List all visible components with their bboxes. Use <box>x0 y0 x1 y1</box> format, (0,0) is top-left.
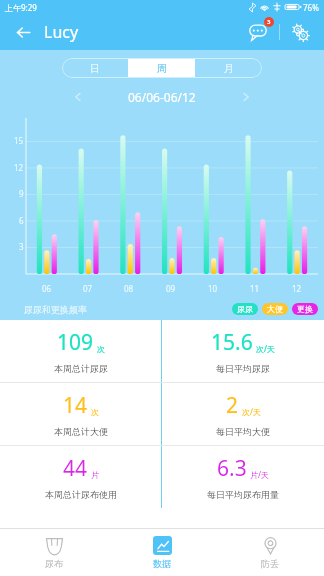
staticText: 数据 <box>153 558 171 569</box>
button[interactable]: 14 <box>0 383 161 445</box>
staticText: 07 <box>83 283 93 294</box>
staticText: 片/天 <box>250 469 269 480</box>
button[interactable]: 44 <box>0 446 161 508</box>
staticText: 大便 <box>267 304 283 314</box>
button[interactable]: 2 <box>162 383 324 445</box>
button[interactable]: 防丢 <box>216 529 324 576</box>
button[interactable]: 6.3 <box>162 446 324 508</box>
staticText: 每日平均大便 <box>216 426 270 437</box>
button[interactable]: 周 <box>128 58 195 78</box>
staticText: 9 <box>19 188 24 199</box>
button[interactable]: Previous week <box>68 87 88 107</box>
staticText: 防丢 <box>261 558 279 569</box>
staticText: 次/天 <box>242 406 261 417</box>
button[interactable]: 大便 <box>262 303 288 315</box>
staticText: 109 <box>57 328 94 357</box>
button[interactable]: 日 <box>62 58 128 78</box>
staticText: 每日平均尿尿 <box>216 363 270 374</box>
staticText: 次/天 <box>256 343 275 354</box>
staticText: 06 <box>42 283 52 294</box>
staticText: 15.6 <box>211 328 253 357</box>
staticText: 每日平均尿布用量 <box>207 489 279 500</box>
staticText: 11 <box>250 283 260 294</box>
staticText: 片 <box>91 470 99 480</box>
staticText: 6.3 <box>217 454 247 483</box>
staticText: 76% <box>303 2 319 13</box>
button[interactable]: Back <box>10 19 36 45</box>
staticText: 本周总计大便 <box>54 426 108 437</box>
button[interactable]: Next week <box>236 87 256 107</box>
button[interactable]: Messages <box>245 18 273 46</box>
staticText: 08 <box>124 283 134 294</box>
staticText: 09 <box>166 283 176 294</box>
button[interactable]: 尿尿 <box>232 303 258 315</box>
staticText: 12 <box>292 283 302 294</box>
staticText: 本周总计尿尿 <box>54 363 108 374</box>
staticText: 12 <box>14 162 24 173</box>
staticText: 6 <box>19 215 24 226</box>
staticText: 2 <box>226 391 239 420</box>
button[interactable]: 尿布 <box>0 529 108 576</box>
staticText: Lucy <box>44 21 79 43</box>
staticText: 日 <box>90 62 100 75</box>
staticText: 10 <box>208 283 218 294</box>
staticText: 尿尿 <box>237 304 253 314</box>
staticText: 15 <box>14 135 24 146</box>
staticText: 14 <box>63 391 88 420</box>
staticText: 月 <box>224 62 234 75</box>
button[interactable]: 更换 <box>292 303 318 315</box>
staticText: 3 <box>19 241 24 252</box>
staticText: 44 <box>63 454 88 483</box>
button[interactable]: 109 <box>0 320 161 382</box>
staticText: 次 <box>97 344 105 354</box>
button[interactable]: 月 <box>195 58 262 78</box>
button[interactable]: 15.6 <box>162 320 324 382</box>
button[interactable]: 数据 <box>108 529 216 576</box>
staticText: 周 <box>157 62 167 75</box>
button[interactable]: Settings <box>286 18 314 46</box>
staticText: 上午9:29 <box>5 2 37 13</box>
staticText: 3 <box>267 18 271 26</box>
staticText: 本周总计尿布使用 <box>45 489 117 500</box>
staticText: 次 <box>91 407 99 417</box>
staticText: 尿布 <box>45 558 63 569</box>
staticText: 更换 <box>297 304 313 314</box>
staticText: 06/06-06/12 <box>128 89 196 105</box>
staticText: 尿尿和更换频率 <box>24 304 87 315</box>
